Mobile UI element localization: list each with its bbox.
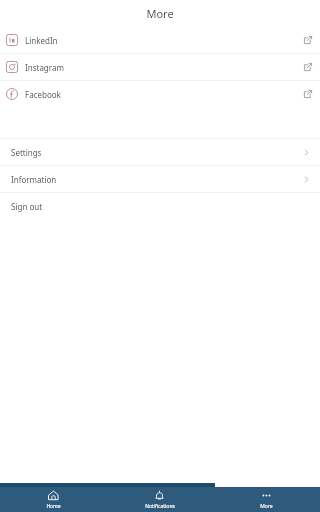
other: Open Facebook <box>303 89 313 99</box>
other: Open LinkedIn <box>303 35 313 45</box>
button[interactable]: Notifications <box>106 487 213 512</box>
staticText: Instagram <box>25 62 64 73</box>
other: Open Instagram <box>303 62 313 72</box>
staticText: More <box>260 503 273 510</box>
staticText: Home <box>46 503 61 510</box>
button[interactable]: More <box>213 487 320 512</box>
staticText: Facebook <box>25 89 61 100</box>
staticText: Sign out <box>11 201 43 212</box>
button[interactable]: LinkedIn <box>0 27 320 53</box>
staticText: Information <box>11 174 57 185</box>
staticText: LinkedIn <box>25 35 58 46</box>
staticText: More <box>146 6 174 21</box>
button[interactable]: Sign out <box>0 193 320 219</box>
button[interactable]: Settings <box>0 139 320 165</box>
button[interactable]: Instagram <box>0 54 320 80</box>
staticText: Settings <box>11 147 42 158</box>
button[interactable]: Information <box>0 166 320 192</box>
button[interactable]: Facebook <box>0 81 320 107</box>
button[interactable]: Home <box>0 487 106 512</box>
staticText: Notifications <box>145 503 175 510</box>
